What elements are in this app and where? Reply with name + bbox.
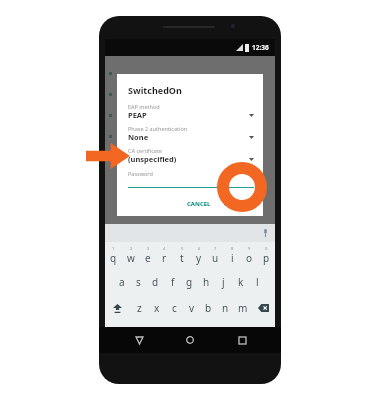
staticText: q — [110, 251, 117, 265]
button[interactable]: 2 — [122, 242, 139, 269]
button[interactable]: j — [215, 269, 232, 295]
staticText: x — [154, 301, 160, 315]
staticText: m — [238, 301, 248, 315]
staticText: . — [237, 329, 240, 340]
button[interactable]: c — [166, 295, 183, 321]
staticText: n — [222, 301, 229, 315]
button[interactable]: g — [181, 269, 198, 295]
staticText: SwitchedOn — [128, 84, 182, 96]
staticText: t — [180, 251, 184, 265]
button[interactable]: Backspace — [251, 295, 275, 321]
button[interactable]: b — [200, 295, 217, 321]
staticText: l — [256, 275, 259, 289]
staticText: w — [127, 251, 135, 265]
button[interactable]: v — [183, 295, 200, 321]
staticText: PEAP — [128, 110, 147, 120]
staticText: e — [145, 251, 151, 265]
staticText: Phase 2 authentication — [128, 125, 188, 132]
staticText: a — [119, 275, 125, 289]
staticText: 12:36 — [252, 43, 269, 52]
button[interactable] — [128, 187, 254, 188]
button[interactable]: 3 — [139, 242, 156, 269]
button[interactable]: l — [249, 269, 266, 295]
staticText: Password — [128, 170, 153, 177]
staticText: 8 — [231, 246, 234, 251]
button[interactable]: n — [217, 295, 234, 321]
staticText: CANCEL — [187, 200, 211, 208]
button[interactable]: ?123 — [105, 321, 132, 348]
button[interactable]: z — [130, 295, 148, 321]
button[interactable]: 4 — [156, 242, 173, 269]
button[interactable]: s — [130, 269, 147, 295]
button[interactable]: CONNECT — [219, 197, 258, 211]
button[interactable]: Shift — [105, 295, 130, 321]
staticText: 1 — [112, 246, 115, 251]
button[interactable]: . — [231, 321, 246, 348]
button[interactable]: Phase 2 authentication — [128, 125, 254, 142]
staticText: 3 — [147, 246, 150, 251]
staticText: b — [205, 301, 212, 315]
button[interactable]: Home — [178, 328, 202, 352]
button[interactable]: m — [234, 295, 251, 321]
staticText: 5 — [181, 246, 184, 251]
button[interactable]: 7 — [207, 242, 224, 269]
button[interactable]: , — [132, 321, 147, 348]
button[interactable]: EAP method — [128, 103, 254, 120]
staticText: CA certificate — [128, 147, 162, 154]
staticText: k — [238, 275, 244, 289]
button[interactable]: 9 — [241, 242, 258, 269]
staticText: f — [171, 275, 175, 289]
button[interactable]: 5 — [173, 242, 190, 269]
button[interactable]: CA certificate — [128, 147, 254, 164]
button[interactable]: 1 — [105, 242, 122, 269]
button[interactable]: Recents — [230, 328, 254, 352]
button[interactable]: 8 — [224, 242, 241, 269]
button[interactable]: Back — [127, 328, 151, 352]
staticText: EAP method — [128, 103, 160, 110]
button[interactable]: Enter — [246, 321, 275, 348]
staticText: 2 — [130, 246, 133, 251]
staticText: u — [212, 251, 219, 265]
button[interactable]: 0 — [258, 242, 275, 269]
button[interactable]: 6 — [190, 242, 207, 269]
staticText: 7 — [214, 246, 217, 251]
staticText: 0 — [265, 246, 268, 251]
staticText: j — [222, 275, 225, 289]
staticText: o — [246, 251, 253, 265]
staticText: r — [162, 251, 167, 265]
staticText: d — [152, 275, 159, 289]
staticText: CONNECT — [224, 200, 253, 208]
staticText: c — [172, 301, 177, 315]
button[interactable]: k — [232, 269, 249, 295]
other: Voice input — [263, 229, 268, 237]
staticText: y — [196, 251, 202, 265]
button[interactable]: h — [198, 269, 215, 295]
button[interactable] — [147, 330, 231, 339]
button[interactable]: d — [147, 269, 164, 295]
staticText: s — [136, 275, 141, 289]
staticText: h — [203, 275, 210, 289]
staticText: p — [263, 251, 270, 265]
button[interactable]: CANCEL — [182, 197, 216, 211]
staticText: , — [138, 329, 141, 340]
button[interactable]: f — [164, 269, 181, 295]
staticText: None — [128, 132, 149, 142]
staticText: 6 — [198, 246, 201, 251]
button[interactable]: a — [113, 269, 130, 295]
staticText: 4 — [163, 246, 166, 251]
staticText: i — [231, 251, 234, 265]
other: Highlight CONNECT — [217, 162, 267, 212]
staticText: v — [189, 301, 195, 315]
staticText: z — [137, 301, 142, 315]
staticText: g — [186, 275, 193, 289]
staticText: 9 — [248, 246, 251, 251]
staticText: (unspecified) — [128, 154, 177, 164]
button[interactable]: x — [148, 295, 166, 321]
